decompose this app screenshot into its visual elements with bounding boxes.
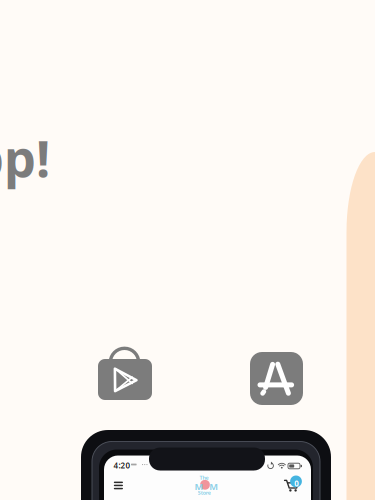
staticText: 0 [294,478,299,489]
staticText: pp! [0,124,50,191]
staticText: The [200,474,209,481]
button[interactable]: The Mom Store [81,430,331,500]
staticText: M [194,480,203,493]
button[interactable]: Get it on Google Play [98,347,152,400]
staticText: Store [198,489,211,496]
button[interactable]: Cart [81,430,331,500]
staticText: 4:20 [113,460,130,471]
staticText: M [209,480,218,493]
button[interactable]: Menu [81,430,331,500]
button[interactable]: Download on the App Store [250,352,303,405]
